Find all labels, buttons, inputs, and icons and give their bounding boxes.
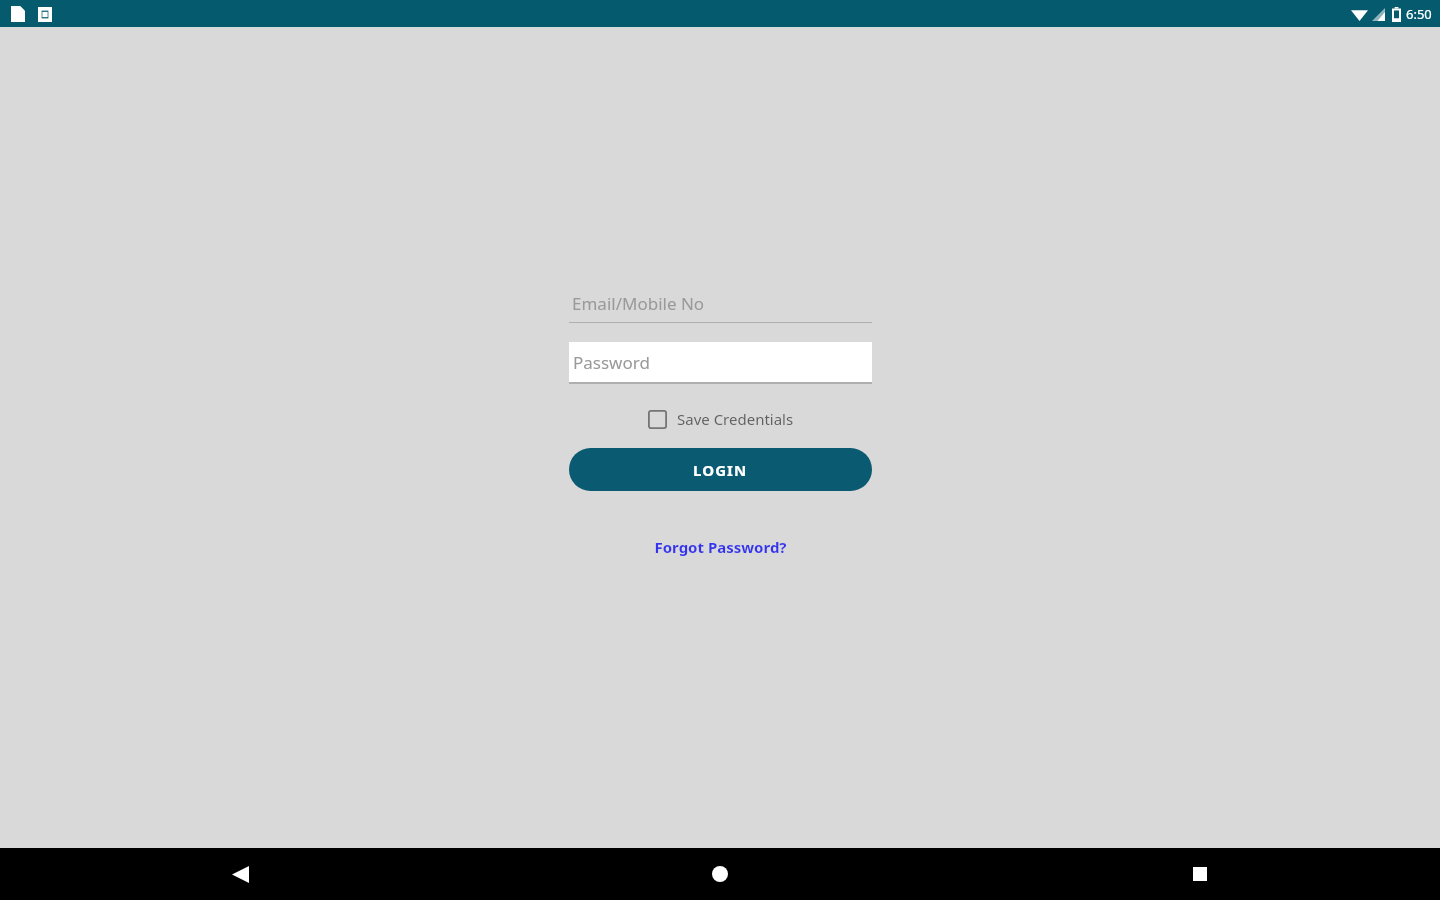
button[interactable]: Email/Mobile No	[569, 284, 872, 323]
button[interactable]: Recents	[960, 848, 1440, 900]
button[interactable]: LOGIN	[569, 448, 872, 491]
staticText: Forgot Password?	[654, 537, 787, 557]
staticText: Password	[573, 351, 650, 374]
staticText: Save Credentials	[677, 409, 794, 429]
button[interactable]: Save Credentials	[644, 405, 798, 433]
button[interactable]: Home	[480, 848, 960, 900]
staticText: Email/Mobile No	[572, 292, 705, 315]
button[interactable]: Forgot Password?	[646, 533, 795, 561]
button[interactable]: Back	[0, 848, 480, 900]
button[interactable]: Password	[569, 342, 872, 384]
staticText: LOGIN	[693, 460, 748, 480]
staticText: 6:50	[1406, 5, 1432, 23]
